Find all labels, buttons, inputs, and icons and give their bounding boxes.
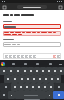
button[interactable] — [55, 75, 61, 83]
button[interactable] — [46, 91, 53, 99]
button[interactable] — [17, 5, 47, 9]
button[interactable]: Format — [16, 54, 20, 58]
button[interactable]: Format — [52, 54, 56, 58]
button[interactable] — [11, 83, 18, 91]
button[interactable] — [7, 67, 14, 75]
button[interactable] — [28, 67, 34, 75]
button[interactable] — [53, 91, 64, 99]
button[interactable]: Tabs — [2, 5, 6, 9]
button[interactable] — [3, 24, 61, 29]
button[interactable] — [49, 75, 55, 83]
button[interactable] — [34, 67, 40, 75]
button[interactable] — [11, 75, 18, 83]
button[interactable]: Format — [24, 54, 28, 58]
button[interactable] — [0, 91, 8, 99]
button[interactable] — [25, 75, 31, 83]
button[interactable]: Format — [12, 54, 16, 58]
button[interactable] — [46, 67, 52, 75]
button[interactable] — [36, 83, 42, 91]
button[interactable] — [0, 83, 11, 91]
button[interactable] — [31, 61, 44, 67]
button[interactable] — [58, 67, 64, 75]
button[interactable]: More suggestions — [57, 61, 63, 67]
button[interactable]: Menu — [58, 5, 62, 9]
button[interactable]: Format — [28, 54, 32, 58]
button[interactable] — [3, 42, 61, 47]
button[interactable]: Format — [8, 54, 12, 58]
button[interactable] — [7, 61, 19, 67]
button[interactable] — [48, 83, 54, 91]
button[interactable]: Keyboard settings — [1, 62, 5, 66]
button[interactable] — [54, 83, 64, 91]
button[interactable]: Format — [56, 54, 60, 58]
button[interactable] — [43, 75, 49, 83]
button[interactable] — [4, 75, 11, 83]
button[interactable] — [44, 61, 57, 67]
button[interactable]: Format — [4, 54, 8, 58]
button[interactable]: Format — [32, 54, 36, 58]
button[interactable] — [18, 75, 25, 83]
button[interactable] — [37, 75, 43, 83]
button[interactable] — [8, 91, 15, 99]
button[interactable] — [24, 83, 30, 91]
button[interactable] — [14, 67, 21, 75]
button[interactable] — [15, 91, 46, 99]
button[interactable] — [21, 67, 28, 75]
button[interactable] — [40, 67, 46, 75]
button[interactable] — [31, 75, 37, 83]
button[interactable] — [42, 83, 48, 91]
button[interactable] — [19, 61, 31, 67]
button[interactable] — [0, 67, 7, 75]
button[interactable]: Format — [20, 54, 24, 58]
button[interactable] — [30, 83, 36, 91]
button[interactable] — [52, 67, 58, 75]
button[interactable] — [18, 83, 24, 91]
